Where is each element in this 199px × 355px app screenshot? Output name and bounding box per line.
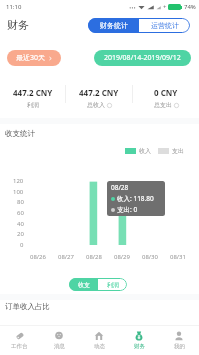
staticText: 最近30天	[16, 53, 46, 63]
staticText: 447.2 CNY	[13, 87, 53, 98]
button[interactable]: 动态	[79, 325, 119, 355]
staticText: 40	[17, 220, 24, 228]
button[interactable]: 消息	[39, 325, 79, 355]
button[interactable]: 运营统计	[139, 18, 190, 33]
staticText: 收入	[139, 147, 151, 155]
staticText: 我的	[174, 343, 185, 350]
staticText: 订单收入占比	[5, 302, 50, 311]
staticText: 80	[17, 198, 24, 206]
staticText: 120	[13, 177, 24, 185]
staticText: 08/30	[142, 253, 158, 261]
staticText: 447.2 CNY	[79, 87, 119, 98]
staticText: 20	[17, 230, 24, 238]
staticText: 支出: 0	[117, 205, 138, 214]
button[interactable]: 最近30天	[7, 50, 61, 66]
staticText: 2019/08/14-2019/09/12	[104, 53, 181, 63]
button[interactable]: 我的	[159, 325, 199, 355]
staticText: 利润	[27, 101, 39, 109]
button[interactable]: 收支	[69, 278, 98, 291]
button[interactable]: 工作台	[0, 325, 39, 355]
staticText: 100	[13, 188, 24, 196]
staticText: 动态	[94, 343, 105, 350]
staticText: 支出	[172, 147, 184, 155]
staticText: 工作台	[11, 343, 28, 350]
button[interactable]: 财务统计	[88, 18, 139, 33]
staticText: 0	[20, 241, 24, 249]
staticText: 08/31	[170, 253, 186, 261]
button[interactable]: 财务	[119, 325, 159, 355]
staticText: 收入: 118.80	[117, 194, 154, 203]
button[interactable]: 利润	[98, 278, 127, 291]
staticText: 财务	[7, 18, 29, 32]
staticText: 08/28	[86, 253, 102, 261]
staticText: +	[163, 3, 167, 11]
staticText: 收支统计	[5, 129, 35, 138]
staticText: 08/28	[111, 183, 129, 192]
staticText: 收支	[78, 281, 90, 289]
staticText: 0 CNY	[154, 87, 178, 98]
staticText: 08/26	[30, 253, 46, 261]
staticText: 总收入	[87, 101, 105, 109]
staticText: 08/27	[58, 253, 74, 261]
button[interactable]: 2019/08/14-2019/09/12	[94, 50, 191, 66]
staticText: 60	[17, 209, 24, 217]
staticText: 总支出	[154, 101, 172, 109]
staticText: 运营统计	[151, 21, 179, 30]
staticText: 消息	[54, 343, 65, 350]
staticText: 08/29	[114, 253, 130, 261]
staticText: 财务	[134, 343, 145, 350]
staticText: 财务统计	[100, 21, 128, 30]
staticText: 74%	[184, 3, 196, 11]
staticText: 11:10	[6, 3, 22, 11]
staticText: 利润	[107, 281, 119, 289]
